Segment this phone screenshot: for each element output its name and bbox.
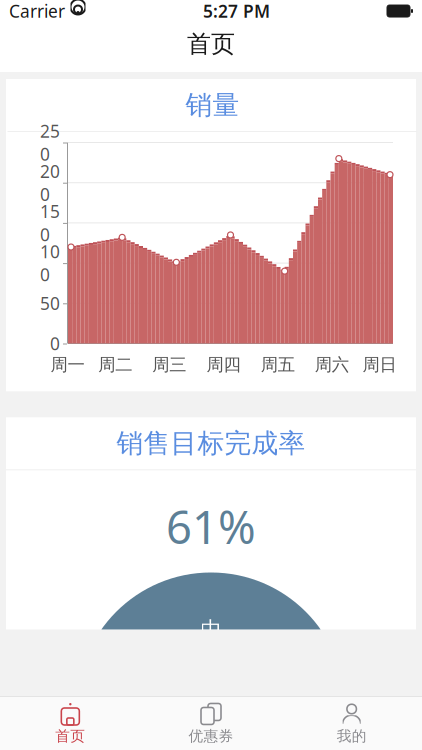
staticText: 周二 bbox=[98, 354, 132, 375]
staticText: 周五 bbox=[261, 354, 295, 375]
staticText: Carrier bbox=[9, 0, 65, 22]
staticText: 150 bbox=[40, 200, 60, 246]
staticText: 100 bbox=[40, 240, 60, 286]
staticText: 中 bbox=[200, 616, 221, 643]
button[interactable]: 优惠券 bbox=[141, 698, 281, 749]
staticText: 250 bbox=[40, 119, 60, 165]
staticText: 周六 bbox=[315, 354, 349, 375]
button[interactable]: 我的 bbox=[281, 698, 422, 749]
staticText: 销售目标完成率 bbox=[116, 427, 305, 460]
staticText: 首页 bbox=[187, 29, 235, 59]
staticText: 周一 bbox=[50, 354, 84, 375]
staticText: 销量 bbox=[185, 89, 239, 121]
staticText: 200 bbox=[40, 160, 60, 206]
staticText: 50 bbox=[40, 292, 60, 315]
staticText: 0 bbox=[50, 332, 60, 355]
staticText: 61% bbox=[166, 496, 256, 556]
staticText: 我的 bbox=[337, 727, 367, 745]
staticText: 周三 bbox=[152, 354, 186, 375]
button[interactable]: 首页 bbox=[0, 698, 141, 749]
staticText: 首页 bbox=[55, 727, 85, 745]
staticText: 周四 bbox=[206, 354, 240, 375]
staticText: 周日 bbox=[362, 354, 396, 375]
staticText: 优惠券 bbox=[188, 727, 233, 745]
staticText: 5:27 PM bbox=[203, 0, 270, 22]
